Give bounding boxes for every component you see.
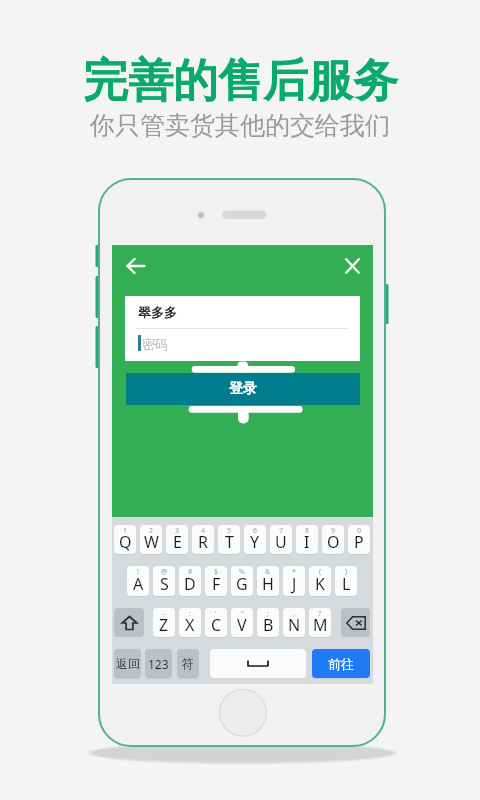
staticText: ' bbox=[215, 609, 217, 619]
staticText: F bbox=[212, 573, 221, 595]
staticText: O bbox=[327, 531, 340, 553]
button[interactable]: " bbox=[231, 608, 253, 637]
staticText: J bbox=[292, 573, 297, 595]
button[interactable]: 4 bbox=[192, 525, 214, 554]
button[interactable]: Space bbox=[210, 649, 306, 678]
staticText: 6 bbox=[253, 526, 258, 536]
button[interactable]: Backspace bbox=[341, 608, 370, 637]
staticText: R bbox=[198, 531, 208, 553]
staticText: Z bbox=[159, 614, 169, 636]
staticText: ; bbox=[267, 609, 269, 619]
button[interactable]: 符 bbox=[177, 649, 199, 678]
staticText: 7 bbox=[279, 526, 284, 536]
button[interactable]: 3 bbox=[166, 525, 188, 554]
staticText: T bbox=[225, 531, 234, 553]
button[interactable]: ! bbox=[127, 566, 149, 596]
staticText: ! bbox=[137, 567, 139, 577]
button[interactable]: 7 bbox=[270, 525, 292, 554]
staticText: 4 bbox=[201, 526, 206, 536]
button[interactable]: & bbox=[257, 566, 279, 596]
staticText: % bbox=[239, 567, 245, 577]
staticText: U bbox=[275, 531, 287, 553]
staticText: Q bbox=[119, 531, 132, 553]
button[interactable]: 返回 bbox=[114, 649, 141, 678]
staticText: ) bbox=[345, 567, 348, 577]
staticText: @ bbox=[161, 567, 168, 577]
staticText: V bbox=[237, 614, 247, 636]
button[interactable]: : bbox=[179, 608, 201, 637]
staticText: H bbox=[262, 573, 274, 595]
button[interactable]: % bbox=[231, 566, 253, 596]
button[interactable]: # bbox=[179, 566, 201, 596]
staticText: S bbox=[160, 573, 169, 595]
button[interactable]: ( bbox=[309, 566, 331, 596]
staticText: 2 bbox=[149, 526, 154, 536]
staticText: W bbox=[144, 531, 159, 553]
staticText: " bbox=[241, 609, 244, 619]
staticText: C bbox=[211, 614, 222, 636]
button[interactable]: - bbox=[153, 608, 175, 637]
staticText: P bbox=[354, 531, 364, 553]
button[interactable]: , bbox=[283, 608, 305, 637]
button[interactable]: 1 bbox=[114, 525, 136, 554]
staticText: 完善的售后服务 bbox=[83, 53, 398, 110]
staticText: 9 bbox=[331, 526, 336, 536]
staticText: 前往 bbox=[328, 656, 354, 672]
button[interactable]: * bbox=[283, 566, 305, 596]
button[interactable]: ; bbox=[257, 608, 279, 637]
button[interactable]: 8 bbox=[296, 525, 318, 554]
staticText: * bbox=[292, 567, 296, 577]
staticText: ? bbox=[318, 609, 322, 619]
staticText: A bbox=[133, 573, 144, 595]
button[interactable]: @ bbox=[153, 566, 175, 596]
button[interactable]: 登录 bbox=[126, 373, 360, 405]
staticText: E bbox=[173, 531, 182, 553]
staticText: 你只管卖货其他的交给我们 bbox=[90, 110, 390, 141]
staticText: N bbox=[288, 614, 301, 636]
staticText: 0 bbox=[357, 526, 362, 536]
button[interactable]: Back bbox=[116, 247, 154, 284]
staticText: 1 bbox=[123, 526, 128, 536]
staticText: ( bbox=[319, 567, 322, 577]
staticText: 登录 bbox=[229, 380, 257, 398]
staticText: 返回 bbox=[116, 656, 140, 671]
staticText: # bbox=[188, 567, 193, 577]
staticText: D bbox=[184, 573, 196, 595]
staticText: 3 bbox=[175, 526, 180, 536]
staticText: I bbox=[304, 531, 310, 553]
staticText: X bbox=[185, 614, 195, 636]
button[interactable]: ' bbox=[205, 608, 227, 637]
staticText: & bbox=[265, 567, 271, 577]
button[interactable]: 9 bbox=[322, 525, 344, 554]
button[interactable]: 123 bbox=[145, 649, 172, 678]
button[interactable]: 前往 bbox=[312, 649, 370, 678]
button[interactable]: ) bbox=[335, 566, 357, 596]
staticText: - bbox=[163, 609, 166, 619]
staticText: 密码 bbox=[142, 336, 168, 352]
button[interactable]: 2 bbox=[140, 525, 162, 554]
staticText: L bbox=[342, 573, 351, 595]
button[interactable]: 0 bbox=[348, 525, 370, 554]
staticText: , bbox=[293, 609, 295, 619]
button[interactable]: 6 bbox=[244, 525, 266, 554]
staticText: 符 bbox=[182, 656, 194, 671]
staticText: 8 bbox=[305, 526, 310, 536]
staticText: 翠多多 bbox=[138, 304, 177, 320]
staticText: M bbox=[313, 614, 328, 636]
staticText: : bbox=[189, 609, 191, 619]
staticText: $ bbox=[214, 567, 219, 577]
button[interactable]: ? bbox=[309, 608, 331, 637]
button[interactable]: Close bbox=[333, 247, 371, 284]
staticText: G bbox=[236, 573, 248, 595]
staticText: Y bbox=[250, 531, 260, 553]
button[interactable]: $ bbox=[205, 566, 227, 596]
staticText: B bbox=[263, 614, 274, 636]
staticText: 123 bbox=[148, 656, 169, 672]
staticText: K bbox=[315, 573, 325, 595]
button[interactable]: 5 bbox=[218, 525, 240, 554]
staticText: 5 bbox=[227, 526, 232, 536]
button[interactable]: Shift bbox=[114, 608, 144, 637]
